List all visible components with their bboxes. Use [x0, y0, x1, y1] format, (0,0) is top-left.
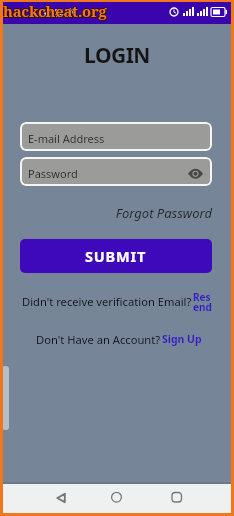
staticText: hackcheat.org: [4, 1, 108, 21]
staticText: SUBMIT: [85, 246, 147, 266]
button[interactable]: [156, 484, 234, 516]
button[interactable]: [78, 484, 156, 516]
staticText: Password: [28, 166, 78, 181]
button[interactable]: Forgot Password: [0, 204, 212, 222]
staticText: hackcheat.org: [3, 0, 107, 20]
staticText: Don't Have an Account?: [36, 332, 161, 347]
button[interactable]: SUBMIT: [20, 239, 212, 273]
button[interactable]: Res: [193, 290, 213, 313]
staticText: hackcheat.org: [3, 1, 107, 21]
staticText: Didn't receive verification Email?: [22, 294, 192, 309]
button[interactable]: [0, 484, 78, 516]
button[interactable]: Password: [20, 157, 212, 186]
button[interactable]: E-mail Address: [20, 122, 212, 151]
staticText: 6:44: [44, 6, 64, 20]
staticText: end: [193, 300, 212, 314]
button[interactable]: Sign Up: [162, 332, 202, 346]
staticText: Res: [193, 290, 211, 304]
staticText: E-mail Address: [28, 131, 105, 146]
staticText: hackcheat.org: [2, 1, 106, 21]
staticText: hackcheat.org: [3, 2, 107, 22]
staticText: LOGIN: [0, 41, 234, 70]
staticText: hackcheat.org: [4, 2, 108, 22]
